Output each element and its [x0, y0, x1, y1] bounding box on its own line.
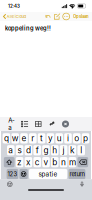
staticText: n — [61, 157, 66, 167]
button[interactable]: Emoji — [19, 169, 28, 179]
staticText: c — [35, 157, 40, 167]
button[interactable]: c — [33, 157, 41, 167]
button[interactable]: Emoji — [7, 181, 13, 187]
button[interactable]: h — [51, 145, 59, 155]
button[interactable]: g — [42, 145, 50, 155]
staticText: return — [69, 170, 84, 178]
staticText: 123 — [7, 170, 17, 178]
button[interactable]: f — [33, 145, 41, 155]
button[interactable]: Opslaan — [73, 14, 89, 19]
button[interactable]: Hide keyboard — [62, 120, 69, 127]
staticText: a — [8, 145, 13, 155]
staticText: p — [83, 133, 88, 143]
button[interactable]: u — [55, 133, 63, 143]
staticText: d — [26, 145, 31, 155]
button[interactable]: v — [42, 157, 50, 167]
button[interactable]: y — [47, 133, 54, 143]
staticText: o — [74, 133, 79, 143]
staticText: u — [57, 133, 62, 143]
button[interactable]: Alle iCloud — [3, 14, 26, 19]
button[interactable]: k — [69, 145, 76, 155]
button[interactable]: b — [51, 157, 59, 167]
button[interactable]: s — [16, 145, 23, 155]
button[interactable]: Checklist — [21, 120, 28, 127]
button[interactable]: Dictate — [79, 181, 85, 187]
button[interactable]: x — [25, 157, 32, 167]
staticText: r — [31, 133, 34, 143]
staticText: f — [36, 145, 39, 155]
button[interactable]: l — [77, 145, 85, 155]
staticText: z — [17, 157, 22, 167]
staticText: k — [70, 145, 75, 155]
staticText: g — [43, 145, 48, 155]
button[interactable]: Undo — [45, 13, 51, 20]
button[interactable]: q — [3, 133, 10, 143]
staticText: 12:43 — [8, 3, 20, 9]
button[interactable]: p — [82, 133, 89, 143]
button[interactable]: w — [11, 133, 19, 143]
staticText: s — [18, 145, 22, 155]
staticText: spatie — [39, 170, 58, 178]
button[interactable]: m — [69, 157, 76, 167]
button[interactable]: r — [29, 133, 37, 143]
staticText: e — [21, 133, 26, 143]
button[interactable]: e — [20, 133, 28, 143]
staticText: Alle iCloud — [7, 14, 26, 19]
button[interactable]: Table — [35, 120, 41, 127]
button[interactable]: Shift — [4, 157, 15, 167]
staticText: koppeling weg!! — [5, 25, 51, 32]
staticText: q — [4, 133, 9, 143]
button[interactable]: d — [25, 145, 32, 155]
staticText: Aa — [8, 117, 14, 131]
button[interactable]: Space — [29, 169, 67, 179]
button[interactable]: Numbers — [7, 169, 18, 179]
staticText: v — [43, 157, 48, 167]
button[interactable]: j — [60, 145, 67, 155]
staticText: i — [67, 133, 69, 143]
staticText: Opslaan — [73, 14, 89, 19]
button[interactable]: z — [16, 157, 23, 167]
staticText: l — [80, 145, 82, 155]
staticText: y — [48, 133, 53, 143]
button[interactable]: Attach — [48, 120, 55, 127]
button[interactable]: Return — [68, 169, 85, 179]
staticText: t — [40, 133, 43, 143]
button[interactable]: o — [73, 133, 81, 143]
button[interactable]: Delete — [77, 157, 88, 167]
button[interactable]: More options — [63, 13, 70, 20]
button[interactable]: Text format — [8, 120, 14, 127]
staticText: j — [63, 145, 65, 155]
staticText: h — [52, 145, 57, 155]
staticText: w — [12, 133, 19, 143]
staticText: b — [52, 157, 57, 167]
staticText: x — [26, 157, 31, 167]
button[interactable]: a — [7, 145, 15, 155]
button[interactable]: t — [38, 133, 45, 143]
staticText: m — [69, 157, 76, 167]
button[interactable]: Compose — [54, 13, 60, 20]
button[interactable]: i — [64, 133, 72, 143]
button[interactable]: n — [60, 157, 67, 167]
